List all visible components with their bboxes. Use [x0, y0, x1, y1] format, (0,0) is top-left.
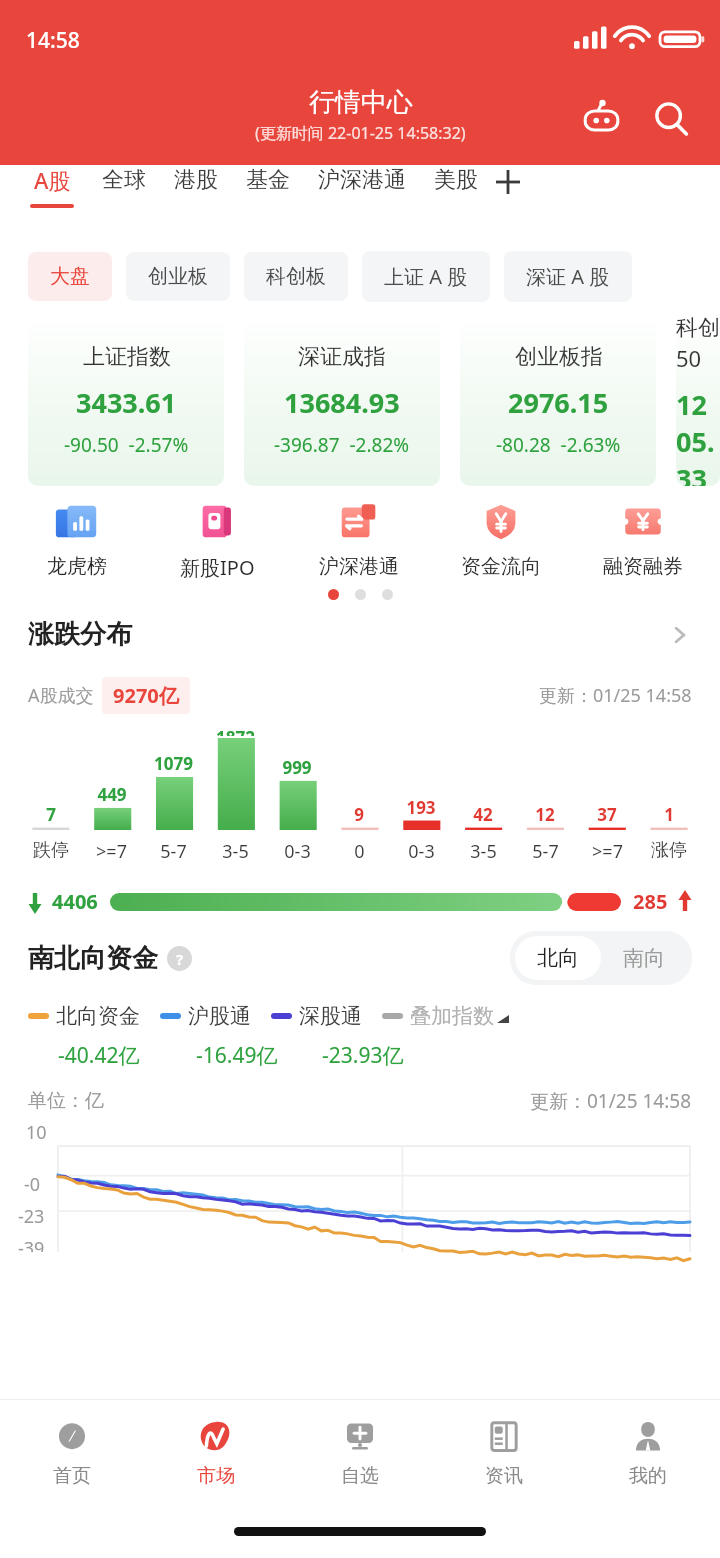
staticText: -23.93亿 [322, 1041, 404, 1070]
staticText: 3433.61 [76, 384, 177, 421]
button[interactable]: 上证指数 [28, 314, 224, 486]
staticText: 深股通 [299, 1003, 362, 1029]
staticText: 新股IPO [180, 554, 255, 581]
staticText: 沪深港通 [319, 554, 399, 579]
staticText: 1872 [216, 726, 255, 736]
staticText: -16.49亿 [196, 1041, 322, 1070]
staticText: 5-7 [532, 839, 559, 864]
staticText: 9 [354, 803, 364, 826]
staticText: A股 [34, 165, 71, 195]
button[interactable]: 资金流向 [430, 498, 572, 579]
button[interactable]: 搜索 [648, 96, 696, 144]
button[interactable]: A股 [16, 165, 88, 208]
button[interactable]: 全球 [88, 166, 160, 207]
button[interactable]: 上证 A 股 [362, 251, 490, 302]
staticText: 融资融券 [603, 554, 683, 579]
staticText: 12 [535, 803, 555, 826]
staticText: 基金 [246, 166, 290, 194]
staticText: 深证成指 [298, 343, 386, 371]
staticText: >=7 [96, 839, 127, 864]
staticText: 市场 [197, 1464, 235, 1488]
staticText: 7 [46, 803, 56, 826]
button[interactable]: 融资融券 [572, 498, 714, 579]
staticText: 1 [664, 803, 674, 826]
button[interactable]: 市场 [144, 1400, 288, 1504]
button[interactable]: 科创板 [244, 252, 348, 301]
button[interactable]: 资讯 [432, 1400, 576, 1504]
button[interactable]: 深证 A 股 [504, 251, 632, 302]
staticText: 13684.93 [284, 384, 400, 421]
staticText: 北向资金 [56, 1003, 140, 1029]
staticText: 上证指数 [83, 343, 171, 371]
button[interactable]: 创业板指 [460, 314, 656, 486]
button[interactable]: 创业板 [126, 252, 230, 301]
button[interactable]: 基金 [232, 166, 304, 207]
staticText: 193 [406, 796, 436, 819]
staticText: 深证 A 股 [526, 263, 610, 290]
staticText: 单位：亿 [28, 1089, 104, 1113]
staticText: 0-3 [408, 839, 435, 864]
staticText: 龙虎榜 [47, 554, 107, 579]
staticText: 美股 [434, 166, 478, 194]
button[interactable]: 科创50 [676, 314, 720, 486]
staticText: ? [176, 949, 184, 969]
staticText: 2976.15 [508, 384, 609, 421]
staticText: 行情中心 [309, 86, 413, 119]
button[interactable]: 南向 [601, 936, 687, 980]
staticText: -40.42亿 [58, 1041, 196, 1070]
staticText: 449 [97, 783, 127, 806]
staticText: -90.50 -2.57% [64, 432, 189, 458]
staticText: 10 [26, 1120, 47, 1145]
staticText: 0-3 [284, 839, 311, 864]
staticText: 14:58 [26, 26, 80, 55]
staticText: 5-7 [160, 839, 187, 864]
button[interactable]: 美股 [420, 166, 492, 207]
staticText: 0 [354, 839, 365, 864]
staticText: 自选 [341, 1464, 379, 1488]
staticText: 全球 [102, 166, 146, 194]
staticText: 港股 [174, 166, 218, 194]
button[interactable]: 添加 [492, 171, 524, 203]
button[interactable]: 涨跌分布 [0, 618, 720, 651]
staticText: 9270亿 [113, 682, 179, 709]
staticText: 南北向资金 [28, 942, 158, 975]
staticText: -39 [18, 1236, 45, 1252]
staticText: 创业板 [148, 264, 208, 289]
button[interactable]: 自选 [288, 1400, 432, 1504]
staticText: 285 [633, 888, 668, 915]
staticText: 我的 [629, 1464, 667, 1488]
button[interactable]: 我的 [576, 1400, 720, 1504]
button[interactable]: 新股IPO [147, 498, 288, 581]
staticText: 4406 [52, 888, 98, 915]
staticText: 创业板指 [515, 343, 603, 371]
staticText: 3-5 [470, 839, 497, 864]
button[interactable]: 深证成指 [244, 314, 440, 486]
staticText: 更新：01/25 14:58 [530, 1088, 692, 1114]
staticText: 涨停 [651, 839, 687, 862]
button[interactable]: 沪深港通 [288, 498, 430, 579]
staticText: -23 [18, 1204, 45, 1229]
staticText: -396.87 -2.82% [274, 432, 410, 458]
staticText: 42 [473, 803, 493, 826]
button[interactable]: 大盘 [28, 252, 112, 301]
staticText: 大盘 [50, 264, 90, 289]
staticText: 北向 [537, 945, 579, 971]
button[interactable]: 龙虎榜 [6, 498, 147, 579]
staticText: -80.28 -2.63% [496, 432, 621, 458]
staticText: 叠加指数 [410, 1003, 494, 1029]
staticText: 1205.33 [676, 386, 720, 486]
button[interactable]: 沪深港通 [304, 166, 420, 207]
button[interactable]: 港股 [160, 166, 232, 207]
staticText: 科创板 [266, 264, 326, 289]
button[interactable]: 说明 [167, 946, 192, 971]
staticText: (更新时间 22-01-25 14:58:32) [255, 122, 466, 144]
staticText: 1079 [154, 752, 193, 775]
staticText: 沪深港通 [318, 166, 406, 194]
button[interactable]: 智能助手 [578, 96, 626, 144]
staticText: 科创50 [676, 314, 720, 373]
staticText: 首页 [53, 1464, 91, 1488]
button[interactable]: 首页 [0, 1400, 144, 1504]
staticText: 3-5 [222, 839, 249, 864]
button[interactable]: 北向 [515, 936, 601, 980]
staticText: 999 [282, 756, 312, 779]
